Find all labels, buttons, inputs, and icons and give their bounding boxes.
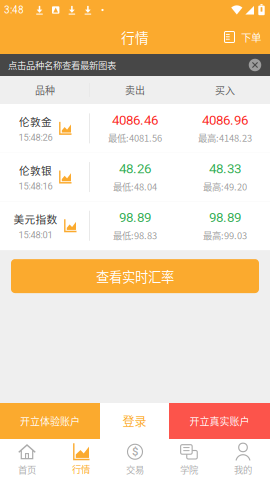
button[interactable]: 学院: [162, 439, 216, 480]
staticText: 我的: [234, 463, 252, 476]
button[interactable]: 开立体验账户: [0, 403, 100, 439]
staticText: 最高:99.03: [203, 228, 247, 242]
staticText: 交易: [126, 463, 144, 476]
button[interactable]: 下单: [215, 20, 270, 54]
staticText: 4086.96: [202, 112, 248, 128]
button[interactable]: 开立真实账户: [169, 403, 270, 439]
button[interactable]: 行情: [54, 439, 108, 480]
button[interactable]: $: [108, 439, 162, 480]
staticText: 伦敦银: [19, 162, 52, 178]
staticText: 15:48:26: [18, 132, 52, 143]
staticText: 开立体验账户: [20, 414, 80, 428]
staticText: 下单: [241, 29, 261, 45]
staticText: 48.26: [119, 161, 151, 177]
staticText: 开立真实账户: [189, 414, 249, 428]
staticText: 最低:48.04: [113, 180, 157, 193]
button[interactable]: 查看实时汇率: [11, 259, 259, 293]
staticText: 98.89: [209, 210, 241, 225]
button[interactable]: 关闭提示: [244, 54, 266, 76]
staticText: 首页: [18, 463, 36, 476]
staticText: 行情: [72, 462, 90, 476]
staticText: 最高:4148.23: [198, 131, 252, 144]
button[interactable]: 伦敦金: [0, 104, 270, 153]
staticText: 买入: [215, 83, 235, 97]
staticText: 伦敦金: [19, 114, 52, 129]
staticText: 美元指数: [13, 211, 57, 226]
staticText: 48.33: [209, 161, 241, 177]
button[interactable]: 首页: [0, 439, 54, 480]
staticText: 查看实时汇率: [96, 266, 174, 286]
button[interactable]: 我的: [216, 439, 270, 480]
staticText: 3:48: [4, 4, 24, 16]
staticText: 最高:49.20: [203, 180, 247, 193]
button[interactable]: 登录: [100, 403, 169, 439]
staticText: 15:48:01: [18, 229, 52, 240]
staticText: 98.89: [119, 210, 151, 225]
button[interactable]: 伦敦银: [0, 153, 270, 201]
staticText: 点击品种名称查看最新图表: [8, 58, 116, 72]
staticText: 最低:98.83: [113, 228, 157, 242]
staticText: 卖出: [125, 83, 145, 97]
staticText: 15:48:16: [18, 181, 52, 192]
button[interactable]: 美元指数: [0, 201, 270, 250]
staticText: 4086.46: [112, 112, 158, 128]
staticText: 最低:4081.56: [108, 131, 162, 144]
staticText: 行情: [121, 27, 149, 47]
staticText: 品种: [35, 83, 55, 97]
staticText: $: [132, 445, 138, 458]
staticText: 登录: [122, 412, 146, 430]
staticText: 学院: [180, 463, 198, 476]
